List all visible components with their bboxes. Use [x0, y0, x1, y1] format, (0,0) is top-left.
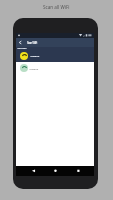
- staticText: WiFi Connected: [17, 47, 27, 50]
- staticText: Scan all WiFi: [43, 4, 70, 10]
- button[interactable]: AndroidWifi: [16, 51, 94, 60]
- staticText: AndroidWifi: [29, 67, 38, 70]
- button[interactable]: Back: [16, 38, 27, 47]
- staticText: AndroidWifi: [30, 54, 39, 57]
- button[interactable]: AndroidWifi: [16, 62, 94, 74]
- staticText: Scan WiFi: [27, 41, 37, 45]
